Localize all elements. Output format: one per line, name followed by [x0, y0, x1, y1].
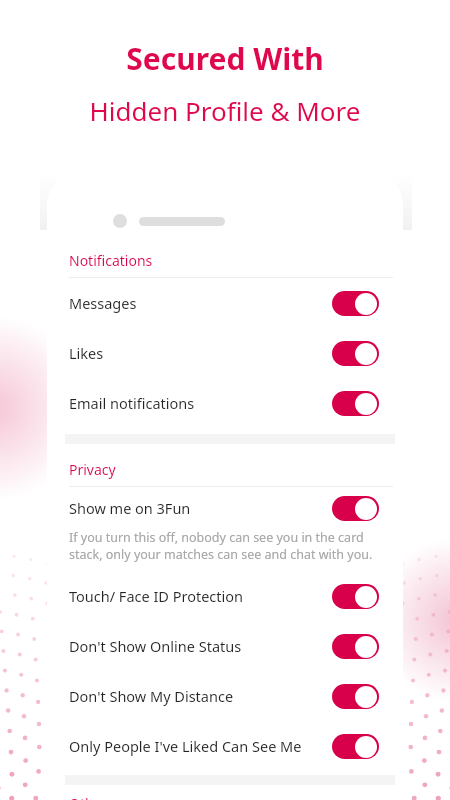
staticText: Secured With — [0, 38, 450, 79]
staticText: Privacy — [69, 460, 116, 479]
button[interactable]: Email notifications — [47, 378, 403, 428]
button[interactable]: Toggle on — [332, 496, 379, 521]
button[interactable]: Toggle on — [332, 734, 379, 759]
staticText: Messages — [69, 293, 137, 313]
button[interactable]: Touch/ Face ID Protection — [47, 571, 403, 621]
button[interactable]: Likes — [47, 328, 403, 378]
button[interactable]: Don't Show Online Status — [47, 621, 403, 671]
button[interactable]: Toggle on — [332, 634, 379, 659]
staticText: Others — [69, 794, 115, 800]
staticText: Only People I've Liked Can See Me — [69, 736, 302, 756]
staticText: Hidden Profile & More — [0, 93, 450, 128]
button[interactable]: Don't Show My Distance — [47, 671, 403, 721]
button[interactable]: Toggle on — [332, 684, 379, 709]
button[interactable]: Toggle on — [332, 391, 379, 416]
staticText: If you turn this off, nobody can see you… — [69, 529, 379, 563]
button[interactable]: Only People I've Liked Can See Me — [47, 721, 403, 771]
staticText: Touch/ Face ID Protection — [69, 586, 244, 606]
button[interactable]: Toggle on — [332, 341, 379, 366]
button[interactable]: Show me on 3Fun — [47, 487, 403, 529]
staticText: Likes — [69, 343, 104, 363]
staticText: Notifications — [69, 251, 153, 270]
button[interactable]: Messages — [47, 278, 403, 328]
staticText: Email notifications — [69, 393, 195, 413]
staticText: Don't Show Online Status — [69, 636, 242, 656]
staticText: Show me on 3Fun — [69, 498, 191, 518]
button[interactable]: Toggle on — [332, 584, 379, 609]
staticText: Don't Show My Distance — [69, 686, 234, 706]
button[interactable]: Toggle on — [332, 291, 379, 316]
